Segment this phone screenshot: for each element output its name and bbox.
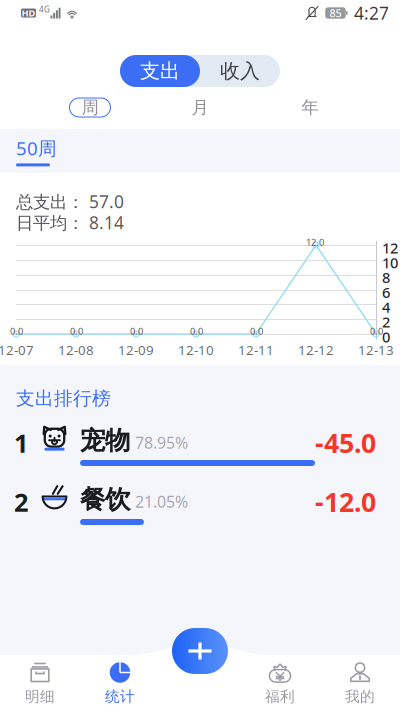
staticText: 85 [329, 6, 341, 20]
staticText: 12-11 [238, 341, 274, 359]
staticText: 2 [14, 485, 28, 519]
staticText: 12-08 [58, 341, 94, 359]
staticText: 12-09 [118, 341, 154, 359]
staticText: 日平均： 8.14 [16, 211, 124, 234]
staticText: 4G [39, 4, 50, 15]
staticText: 2 [382, 312, 390, 332]
staticText: 明细 [25, 687, 55, 705]
staticText: 50周 [16, 136, 57, 160]
button[interactable]: 明细 [0, 655, 80, 711]
staticText: 我的 [345, 687, 375, 705]
staticText: 78.95% [135, 432, 188, 453]
button[interactable]: 周 [35, 98, 145, 117]
staticText: 4:27 [354, 1, 389, 24]
staticText: 0.0 [70, 325, 83, 337]
staticText: 收入 [220, 59, 260, 83]
staticText: 月 [191, 97, 208, 118]
staticText: -12.0 [315, 484, 376, 519]
staticText: 支出 [140, 59, 180, 83]
staticText: 支出排行榜 [16, 387, 111, 410]
staticText: 12.0 [306, 236, 324, 248]
staticText: 12-12 [298, 341, 334, 359]
staticText: 0.0 [190, 325, 203, 337]
staticText: 福利 [265, 687, 295, 705]
button[interactable]: 支出 [120, 55, 200, 87]
staticText: 0.0 [130, 325, 143, 337]
staticText: 0.0 [250, 325, 263, 337]
button[interactable]: 我的 [320, 655, 400, 711]
staticText: 8 [382, 268, 390, 287]
staticText: 周 [81, 97, 98, 118]
staticText: 6 [382, 282, 390, 302]
staticText: 宠物 [80, 425, 130, 456]
button[interactable]: 福利 [240, 655, 320, 711]
staticText: -45.0 [315, 425, 376, 460]
staticText: 1 [14, 426, 28, 460]
button[interactable]: 1 [0, 426, 400, 470]
button[interactable]: 2 [0, 485, 400, 529]
staticText: 21.05% [135, 491, 188, 512]
staticText: 0 [382, 327, 390, 346]
staticText: 餐饮 [80, 484, 130, 515]
button[interactable]: 支出排行榜 [0, 365, 127, 416]
staticText: 0.0 [10, 325, 23, 337]
staticText: 12 [382, 238, 398, 257]
staticText: 年 [301, 97, 318, 118]
staticText: 12-10 [178, 341, 214, 359]
button[interactable]: 月 [145, 98, 255, 117]
staticText: 总支出： 57.0 [16, 190, 124, 213]
staticText: 12-07 [0, 341, 34, 359]
staticText: HD [21, 7, 35, 19]
button[interactable]: Add transaction [172, 628, 228, 674]
staticText: 统计 [105, 687, 135, 705]
button[interactable]: 收入 [200, 55, 280, 87]
staticText: 0.0 [370, 325, 383, 337]
button[interactable]: 统计 [80, 655, 160, 711]
button[interactable]: 年 [255, 98, 365, 117]
staticText: 4 [382, 297, 390, 317]
staticText: 12-13 [358, 341, 394, 359]
staticText: 10 [382, 253, 398, 272]
